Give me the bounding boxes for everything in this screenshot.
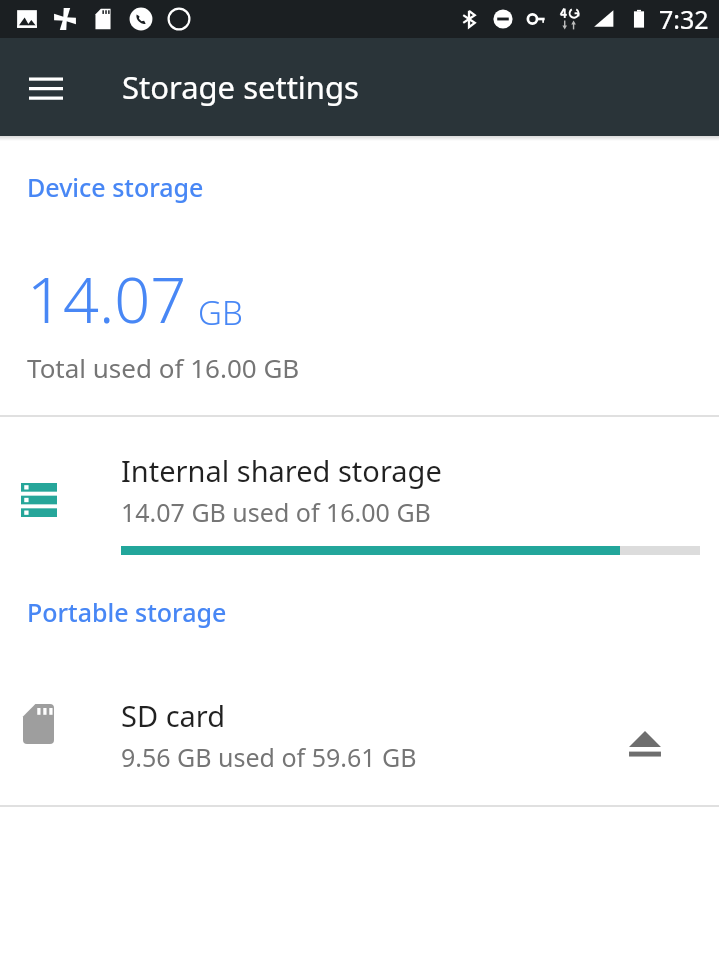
staticText: Portable storage xyxy=(27,595,227,629)
staticText: 7:32 xyxy=(659,2,709,36)
staticText: Internal shared storage xyxy=(121,451,442,490)
staticText: Storage settings xyxy=(122,66,359,108)
staticText: Device storage xyxy=(27,170,204,204)
staticText: Total used of 16.00 GB xyxy=(27,350,300,385)
staticText: GB xyxy=(198,290,243,335)
staticText: 14.07 GB used of 16.00 GB xyxy=(121,495,431,529)
button[interactable]: SD card xyxy=(0,629,719,805)
staticText: SD card xyxy=(121,696,226,735)
button[interactable]: Eject SD card xyxy=(606,715,684,793)
staticText: 14.07 xyxy=(27,256,187,342)
staticText: 9.56 GB used of 59.61 GB xyxy=(121,740,417,774)
button[interactable]: Internal shared storage xyxy=(0,417,719,595)
button[interactable]: Open navigation drawer xyxy=(14,55,78,119)
